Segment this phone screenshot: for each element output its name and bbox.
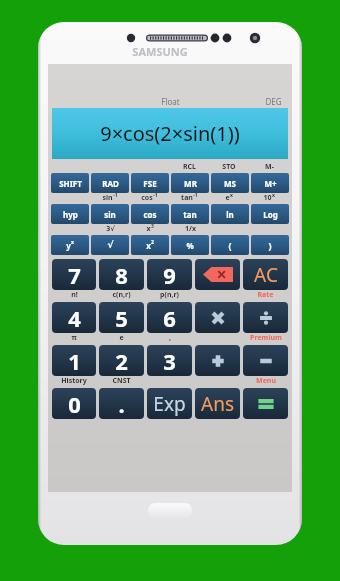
button[interactable]: Ans [195,388,240,419]
button[interactable]: 7 [52,259,96,290]
button[interactable]: cos [131,204,169,224]
button[interactable]: √ [91,235,129,255]
button[interactable]: ( [211,235,249,255]
staticText: RCL [183,162,196,172]
staticText: 3√ [106,224,115,234]
button[interactable]: 0 [52,388,96,419]
button[interactable]: MS [211,173,249,193]
button[interactable]: FSE [131,173,169,193]
staticText: 0 [68,389,81,419]
staticText: -1 [113,192,118,199]
button[interactable]: Equals [243,388,288,419]
staticText: ) [268,239,272,251]
button[interactable]: tan [171,204,209,224]
staticText: Premium [250,333,282,343]
button[interactable]: 3 [147,345,192,376]
staticText: x [71,239,74,246]
staticText: Ans [201,391,234,417]
staticText: STO [222,162,236,172]
staticText: 8 [115,260,128,290]
button[interactable]: Minus [243,345,288,376]
staticText: MR [184,178,197,189]
button[interactable]: y [51,235,89,255]
button[interactable]: 1 [52,345,96,376]
button[interactable]: Home [148,503,192,518]
staticText: , [169,333,171,343]
staticText: 7 [68,260,81,290]
staticText: Exp [153,391,186,417]
button[interactable]: Decimal point [99,388,144,419]
staticText: hyp [63,209,78,220]
staticText: p(n,r) [160,290,179,300]
staticText: SHIFT [59,178,82,189]
staticText: tan [181,193,193,203]
staticText: 2 [151,239,154,246]
staticText: y [66,240,71,251]
staticText: M- [265,162,274,172]
staticText: 1 [68,346,81,376]
button[interactable]: Log [251,204,289,224]
staticText: FSE [143,178,157,189]
button[interactable]: Divide [243,302,288,333]
button[interactable]: Backspace [195,259,240,290]
staticText: x [272,192,275,199]
button[interactable]: M+ [251,173,289,193]
staticText: tan [183,209,197,220]
staticText: M+ [264,178,277,189]
staticText: MS [224,178,236,189]
staticText: 2 [115,346,128,376]
staticText: 6 [163,303,176,333]
button[interactable]: 8 [99,259,144,290]
button[interactable]: Multiply [195,302,240,333]
button[interactable]: 2 [99,345,144,376]
staticText: Menu [256,376,276,386]
staticText: RAD [102,178,119,189]
staticText: e [119,333,124,343]
staticText: % [186,240,194,251]
staticText: x [146,240,151,251]
staticText: Float [161,96,180,107]
button[interactable]: RAD [91,173,129,193]
staticText: 10 [263,193,272,203]
button[interactable]: 6 [147,302,192,333]
button[interactable]: 4 [52,302,96,333]
staticText: 5 [115,303,128,333]
staticText: . [118,389,125,419]
staticText: e [225,193,230,203]
button[interactable]: sin [91,204,129,224]
staticText: sin [102,193,113,203]
staticText: SAMSUNG [132,44,188,59]
staticText: 3 [163,346,176,376]
button[interactable]: MR [171,173,209,193]
button[interactable]: x [131,235,169,255]
staticText: 1/x [185,224,196,234]
staticText: -1 [153,192,158,199]
button[interactable]: 9 [147,259,192,290]
staticText: x [230,192,233,199]
button[interactable]: ln [211,204,249,224]
staticText: History [61,376,87,386]
staticText: AC [254,262,278,288]
button[interactable]: 9×cos(2×sin(1)) [52,108,288,159]
staticText: π [71,333,77,343]
staticText: cos [141,193,153,203]
staticText: 4 [68,303,81,333]
button[interactable]: Exp [147,388,192,419]
staticText: cos [143,209,157,220]
staticText: sin [104,209,116,220]
button[interactable]: SHIFT [51,173,89,193]
button[interactable]: Plus [195,345,240,376]
button[interactable]: AC [243,259,288,290]
button[interactable]: % [171,235,209,255]
staticText: 9 [163,260,176,290]
button[interactable]: ) [251,235,289,255]
staticText: ln [226,209,234,220]
staticText: c(n,r) [112,290,131,300]
staticText: DEG [265,96,282,107]
button[interactable]: 5 [99,302,144,333]
staticText: x [146,224,151,234]
staticText: ( [228,239,232,251]
staticText: 3 [151,223,154,230]
staticText: Rate [257,290,274,300]
button[interactable]: hyp [51,204,89,224]
